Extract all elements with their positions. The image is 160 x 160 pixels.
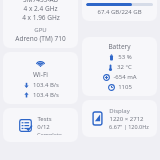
- staticText: 4 x 1.96 GHz: [22, 13, 60, 22]
- button[interactable]: Display: [82, 100, 157, 137]
- other: Battery level: [108, 53, 132, 61]
- button[interactable]: Battery: [82, 37, 157, 96]
- other: Tests: [19, 119, 32, 132]
- staticText: 103.4 B/s: [33, 91, 59, 99]
- staticText: GPU: [34, 26, 47, 34]
- button[interactable]: 2: [3, 0, 78, 48]
- staticText: Complete: [37, 131, 62, 135]
- staticText: Display: [109, 107, 130, 115]
- button[interactable]: Tests: [3, 108, 78, 142]
- staticText: Battery: [108, 42, 131, 51]
- other: Uptime: [108, 83, 132, 91]
- other: Display: [91, 112, 104, 125]
- staticText: 32 °C: [117, 63, 132, 71]
- staticText: 103.4 B/s: [33, 81, 59, 89]
- staticText: Tests: [37, 115, 52, 123]
- other: Wi-Fi: [35, 57, 46, 68]
- staticText: 0/12: [37, 123, 50, 131]
- other: Temperature: [107, 63, 132, 71]
- staticText: 1105: [118, 83, 132, 91]
- staticText: 53 %: [118, 53, 132, 61]
- staticText: 6.67" | 120.0Hz: [109, 123, 149, 130]
- staticText: 4 x 2.4 GHz: [23, 4, 58, 13]
- staticText: Wi-Fi: [33, 70, 48, 79]
- staticText: Adreno (TM) 710: [15, 34, 66, 43]
- other: Download: [23, 81, 59, 89]
- button[interactable]: Storage: [82, 0, 157, 21]
- staticText: 1220 × 2712: [109, 115, 144, 123]
- other: Upload: [23, 91, 59, 99]
- other: Current: [103, 73, 137, 81]
- staticText: SM7435-AB: [23, 0, 58, 4]
- staticText: 67.4 GB/224 GB: [97, 8, 142, 16]
- button[interactable]: Wi-Fi: [3, 52, 78, 104]
- staticText: -654 mA: [113, 73, 137, 81]
